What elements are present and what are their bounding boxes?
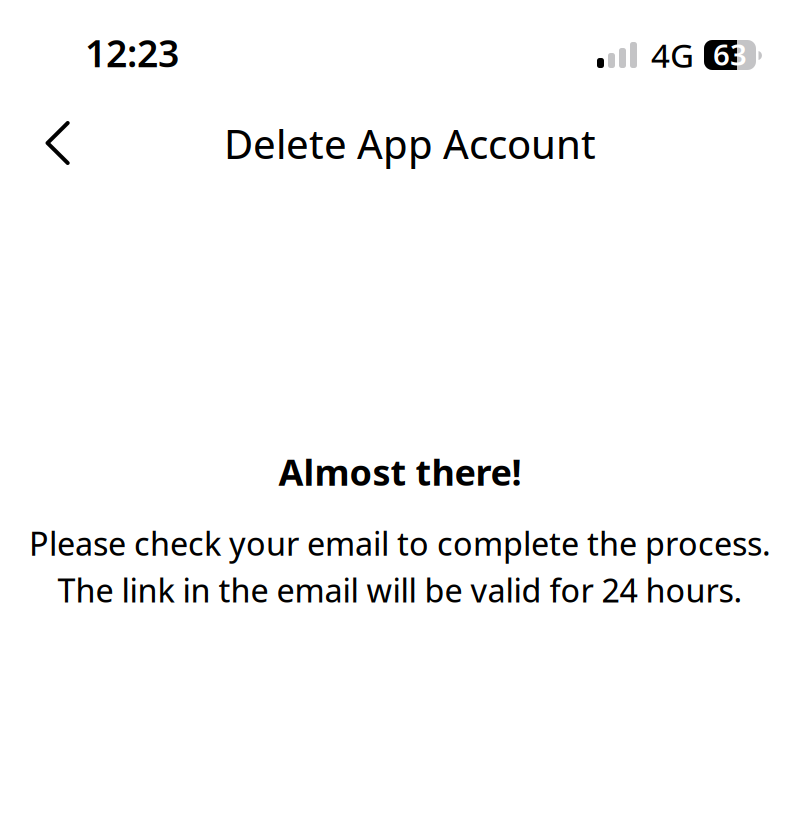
staticText: The link in the email will be valid for … <box>57 569 742 611</box>
staticText: 63 <box>713 34 747 73</box>
staticText: 4G <box>651 33 694 77</box>
staticText: Please check your email to complete the … <box>29 522 771 565</box>
staticText: Almost there! <box>278 448 521 496</box>
button[interactable]: Back <box>20 107 96 179</box>
staticText: 12:23 <box>85 28 179 78</box>
staticText: Delete App Account <box>224 117 596 170</box>
